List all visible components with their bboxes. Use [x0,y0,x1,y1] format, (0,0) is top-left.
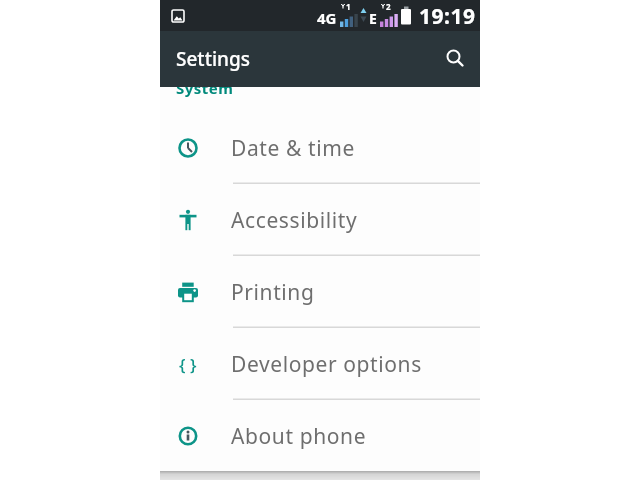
staticText: Date & time [231,134,355,163]
staticText: 2 [386,1,391,12]
staticText: Printing [231,278,315,307]
staticText: 1 [346,1,351,12]
staticText: 19:19 [419,2,476,31]
staticText: System [176,87,234,98]
staticText: Settings [176,46,250,72]
button[interactable]: About phone [160,400,480,472]
staticText: { } [179,353,197,376]
staticText: About phone [231,422,367,451]
button[interactable]: Printing [160,256,480,328]
staticText: 4G [317,8,337,28]
button[interactable] [435,39,475,79]
button[interactable]: Date & time [160,112,480,184]
button[interactable]: { } [160,328,480,400]
staticText: Developer options [231,350,422,379]
button[interactable]: Accessibility [160,184,480,256]
staticText: Accessibility [231,206,358,235]
staticText: E [369,9,377,28]
